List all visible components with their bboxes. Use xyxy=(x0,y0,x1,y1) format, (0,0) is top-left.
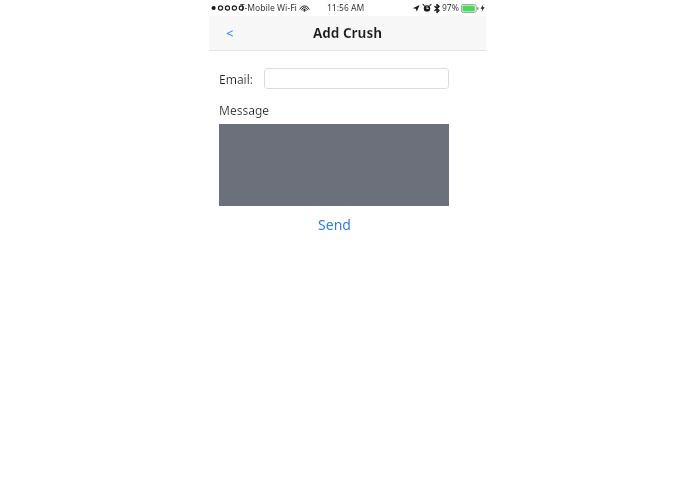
button[interactable]: Back xyxy=(209,16,251,50)
staticText: T-Mobile Wi-Fi xyxy=(240,2,297,14)
staticText: Message xyxy=(219,102,270,118)
staticText: 11:56 AM xyxy=(327,2,365,14)
staticText: Email: xyxy=(219,71,254,87)
staticText: Add Crush xyxy=(313,24,382,42)
button[interactable]: Email input xyxy=(264,68,449,89)
staticText: 97% xyxy=(442,2,459,14)
staticText: Send xyxy=(318,215,351,234)
button[interactable]: Send xyxy=(310,213,359,236)
staticText: < xyxy=(226,24,234,42)
